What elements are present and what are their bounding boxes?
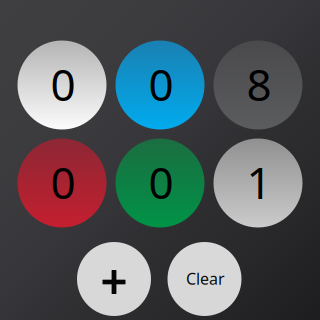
button[interactable]: Add bbox=[77, 242, 151, 316]
button[interactable]: 0 bbox=[115, 40, 204, 129]
button[interactable]: Clear bbox=[167, 242, 241, 316]
staticText: 0 bbox=[50, 153, 75, 211]
button[interactable]: 1 bbox=[213, 138, 302, 227]
button[interactable]: 0 bbox=[115, 138, 204, 227]
button[interactable]: 0 bbox=[17, 40, 106, 129]
button[interactable]: 0 bbox=[17, 138, 106, 227]
staticText: 1 bbox=[246, 153, 271, 211]
staticText: 0 bbox=[50, 55, 75, 113]
staticText: 0 bbox=[148, 153, 173, 211]
staticText: Clear bbox=[186, 268, 225, 289]
button[interactable]: 8 bbox=[213, 40, 302, 129]
staticText: 0 bbox=[148, 55, 173, 113]
staticText: 8 bbox=[246, 55, 271, 113]
